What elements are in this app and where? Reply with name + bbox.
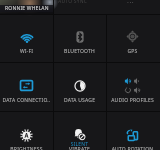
button[interactable]: Auto rotation — [106, 113, 159, 150]
staticText: RONNIE WHELAN — [5, 5, 49, 12]
staticText: AUTO ROTATION — [106, 146, 159, 150]
staticText: DATA CONNECTIO.. — [0, 97, 53, 104]
button[interactable]: Bluetooth — [53, 15, 106, 64]
staticText: GPS — [106, 48, 159, 55]
staticText: SILENT — [53, 141, 106, 148]
staticText: WI-FI — [0, 48, 53, 55]
staticText: AUTO SYNC — [58, 0, 88, 5]
button[interactable]: Wi-Fi — [0, 15, 53, 64]
button[interactable]: Contact Ronnie Whelan — [0, 0, 53, 14]
staticText: AUDIO PROFILES — [106, 97, 159, 104]
staticText: ... — [127, 0, 135, 6]
button[interactable]: GPS — [106, 15, 159, 64]
button[interactable]: Brightness — [0, 113, 53, 150]
staticText: VIBRATE — [53, 146, 106, 150]
button[interactable]: Data connection — [0, 64, 53, 113]
button[interactable]: Data usage — [53, 64, 106, 113]
staticText: DATA USAGE — [53, 97, 106, 104]
staticText: BRIGHTNESS — [0, 146, 53, 150]
staticText: BLUETOOTH — [53, 48, 106, 55]
button[interactable]: Sound mode — [53, 113, 106, 150]
button[interactable]: Audio profiles — [106, 64, 159, 113]
